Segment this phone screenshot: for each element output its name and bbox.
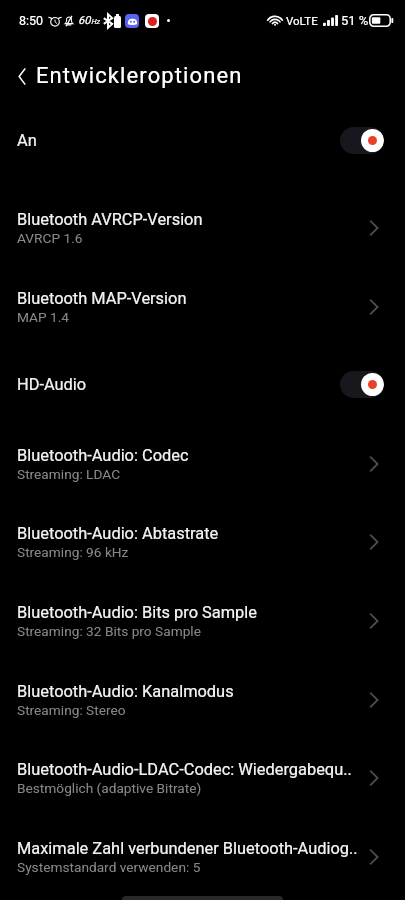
button[interactable]: Bluetooth-Audio-LDAC-Codec: Wiedergabequ… [0, 738, 405, 817]
staticText: Streaming: 96 kHz [17, 544, 129, 560]
staticText: Streaming: 32 Bits pro Sample [17, 623, 201, 639]
staticText: Streaming: Stereo [17, 702, 126, 718]
staticText: Bluetooth-Audio: Codec [17, 446, 189, 465]
staticText: 60 [78, 14, 91, 27]
staticText: Bluetooth-Audio: Bits pro Sample [17, 603, 257, 622]
staticText: Bluetooth AVRCP-Version [17, 210, 203, 229]
staticText: MAP 1.4 [17, 309, 70, 325]
staticText: An [17, 131, 340, 150]
staticText: Maximale Zahl verbundener Bluetooth-Audi… [17, 839, 358, 858]
button[interactable]: Toggle on [340, 127, 384, 154]
button[interactable]: Bluetooth AVRCP-Version [0, 188, 405, 267]
staticText: 51 % [341, 13, 369, 28]
button[interactable]: Bluetooth MAP-Version [0, 267, 405, 346]
button[interactable]: Bluetooth-Audio: Bits pro Sample [0, 581, 405, 660]
button[interactable]: Toggle on [340, 371, 384, 398]
staticText: VoLTE [286, 14, 318, 27]
staticText: Bluetooth MAP-Version [17, 289, 187, 308]
button[interactable]: Bluetooth-Audio: Kanalmodus [0, 660, 405, 739]
staticText: Bluetooth-Audio: Abtastrate [17, 524, 219, 543]
staticText: Entwickleroptionen [36, 63, 243, 89]
button[interactable]: HD-Audio [0, 345, 405, 424]
staticText: AVRCP 1.6 [17, 230, 83, 246]
button[interactable]: Bluetooth-Audio: Abtastrate [0, 502, 405, 581]
staticText: Hz [91, 18, 100, 26]
staticText: Bluetooth-Audio-LDAC-Codec: Wiedergabequ… [17, 760, 352, 779]
button[interactable]: Back [12, 62, 32, 90]
button[interactable]: Bluetooth-Audio: Codec [0, 424, 405, 503]
staticText: Streaming: LDAC [17, 466, 121, 482]
staticText: 8:50 [19, 13, 44, 28]
staticText: Systemstandard verwenden: 5 [17, 859, 201, 875]
staticText: HD-Audio [17, 375, 340, 394]
staticText: Bestmöglich (adaptive Bitrate) [17, 780, 202, 796]
button[interactable]: Maximale Zahl verbundener Bluetooth-Audi… [0, 817, 405, 896]
staticText: Bluetooth-Audio: Kanalmodus [17, 682, 234, 701]
button[interactable]: An [0, 101, 405, 180]
